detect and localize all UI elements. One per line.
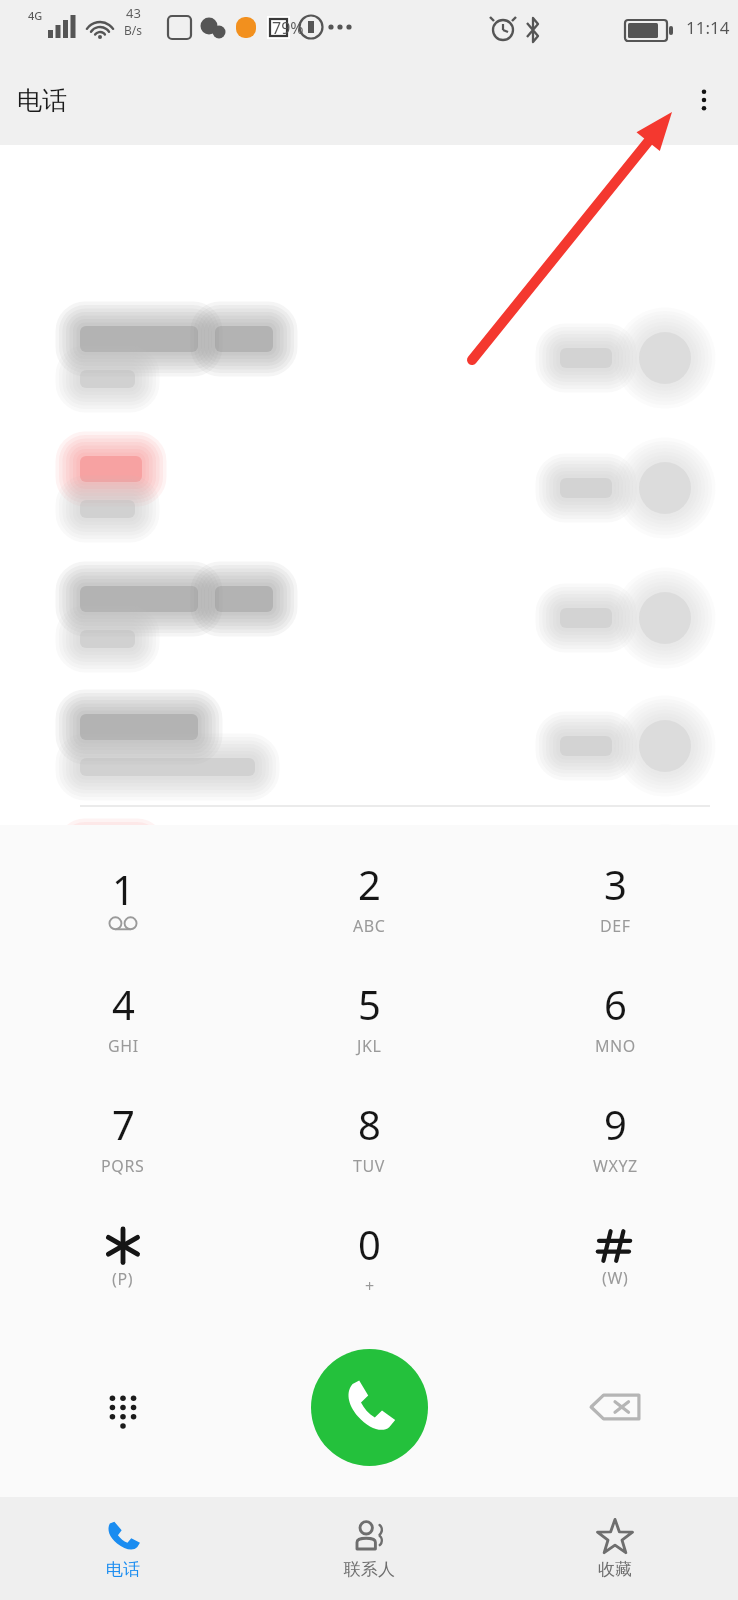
staticText: 8: [358, 1097, 381, 1151]
staticText: ABC: [353, 915, 386, 937]
staticText: 2: [358, 857, 381, 911]
staticText: 3: [604, 857, 627, 911]
staticText: MNO: [595, 1035, 636, 1057]
button[interactable]: Hide keypad: [0, 1317, 246, 1497]
button[interactable]: 电话: [0, 1497, 246, 1600]
staticText: GHI: [108, 1035, 139, 1057]
staticText: 收藏: [598, 1559, 632, 1580]
button[interactable]: 1: [0, 837, 246, 957]
staticText: (P): [112, 1268, 134, 1290]
button[interactable]: 8: [246, 1077, 492, 1197]
staticText: 11:14: [686, 16, 730, 39]
staticText: 5: [358, 977, 381, 1031]
button[interactable]: 5: [246, 957, 492, 1077]
staticText: 43: [126, 4, 141, 22]
staticText: 0: [358, 1217, 381, 1271]
button[interactable]: 3: [492, 837, 738, 957]
staticText: 4G: [28, 8, 43, 23]
staticText: PQRS: [101, 1155, 145, 1177]
button[interactable]: 7: [0, 1077, 246, 1197]
staticText: TUV: [353, 1155, 385, 1177]
button[interactable]: 0: [246, 1197, 492, 1317]
staticText: 6: [604, 977, 627, 1031]
staticText: +: [365, 1275, 375, 1297]
staticText: DEF: [600, 915, 631, 937]
button[interactable]: More options: [680, 76, 728, 124]
button[interactable]: 9: [492, 1077, 738, 1197]
staticText: 9: [604, 1097, 627, 1151]
staticText: 电话: [106, 1559, 140, 1580]
staticText: B/s: [124, 22, 143, 38]
button[interactable]: (W): [492, 1197, 738, 1317]
button[interactable]: 联系人: [246, 1497, 492, 1600]
button[interactable]: 6: [492, 957, 738, 1077]
staticText: (W): [602, 1267, 629, 1289]
staticText: 4: [112, 977, 135, 1031]
staticText: 1: [112, 862, 135, 916]
button[interactable]: 2: [246, 837, 492, 957]
button[interactable]: 收藏: [492, 1497, 738, 1600]
button[interactable]: 4: [0, 957, 246, 1077]
staticText: 79%: [272, 17, 304, 39]
button[interactable]: Call: [311, 1349, 428, 1466]
button[interactable]: (P): [0, 1197, 246, 1317]
staticText: 电话: [17, 85, 67, 116]
staticText: 7: [112, 1097, 135, 1151]
staticText: WXYZ: [593, 1155, 638, 1177]
button[interactable]: Backspace: [492, 1317, 738, 1497]
staticText: JKL: [357, 1035, 382, 1057]
staticText: 联系人: [344, 1559, 395, 1580]
